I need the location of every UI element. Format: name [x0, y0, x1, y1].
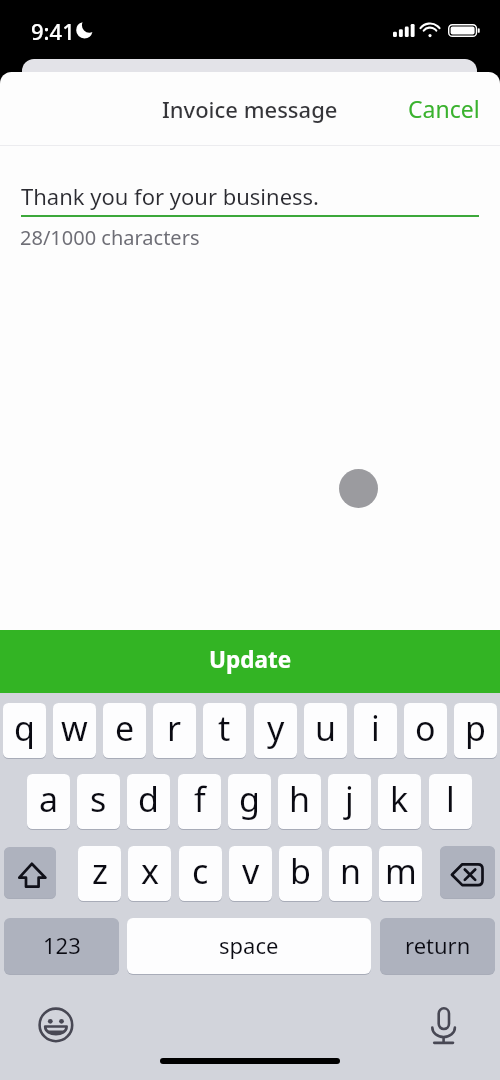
- staticText: 28/1000 characters: [20, 224, 200, 251]
- button[interactable]: r: [153, 703, 196, 758]
- button[interactable]: h: [278, 774, 321, 829]
- button[interactable]: f: [178, 774, 221, 829]
- staticText: 123: [43, 930, 81, 960]
- button[interactable]: z: [78, 846, 121, 901]
- staticText: Invoice message: [162, 94, 338, 124]
- button[interactable]: c: [179, 846, 222, 901]
- button[interactable]: Emoji keyboard: [34, 999, 78, 1043]
- staticText: x: [141, 848, 159, 894]
- button[interactable]: u: [304, 703, 347, 758]
- staticText: s: [90, 776, 107, 822]
- button[interactable]: Cancel: [386, 79, 500, 138]
- button[interactable]: i: [354, 703, 397, 758]
- staticText: t: [218, 705, 231, 751]
- button[interactable]: b: [279, 846, 322, 901]
- staticText: q: [14, 705, 35, 751]
- staticText: h: [289, 776, 311, 822]
- staticText: 9:41: [31, 16, 75, 46]
- button[interactable]: o: [404, 703, 447, 758]
- button[interactable]: m: [379, 846, 422, 901]
- staticText: d: [138, 776, 159, 822]
- button[interactable]: w: [53, 703, 96, 758]
- button[interactable]: space: [127, 918, 371, 974]
- staticText: c: [192, 848, 209, 894]
- staticText: Cancel: [408, 93, 480, 124]
- button[interactable]: x: [128, 846, 171, 901]
- staticText: v: [242, 848, 260, 894]
- button[interactable]: 123: [4, 918, 119, 974]
- staticText: j: [345, 776, 354, 822]
- button[interactable]: e: [103, 703, 146, 758]
- button[interactable]: a: [27, 774, 70, 829]
- staticText: b: [290, 848, 311, 894]
- button[interactable]: j: [328, 774, 371, 829]
- button[interactable]: Backspace: [440, 846, 495, 898]
- staticText: Thank you for your business.: [21, 181, 320, 211]
- button[interactable]: Shift: [4, 847, 56, 898]
- button[interactable]: return: [380, 918, 495, 974]
- staticText: f: [194, 776, 206, 822]
- staticText: p: [465, 705, 486, 751]
- button[interactable]: d: [127, 774, 170, 829]
- staticText: g: [239, 776, 260, 822]
- staticText: space: [219, 930, 279, 960]
- staticText: z: [92, 848, 108, 894]
- staticText: Update: [209, 644, 292, 675]
- button[interactable]: k: [378, 774, 421, 829]
- button[interactable]: y: [254, 703, 297, 758]
- button[interactable]: Update: [0, 630, 500, 693]
- staticText: return: [405, 930, 471, 960]
- button[interactable]: q: [3, 703, 46, 758]
- staticText: m: [385, 848, 417, 894]
- button[interactable]: p: [454, 703, 497, 758]
- button[interactable]: g: [228, 774, 271, 829]
- staticText: k: [390, 776, 409, 822]
- button[interactable]: Voice input: [426, 999, 466, 1049]
- staticText: y: [267, 705, 285, 751]
- button[interactable]: t: [203, 703, 246, 758]
- button[interactable]: l: [429, 774, 472, 829]
- staticText: l: [446, 776, 455, 822]
- button[interactable]: s: [77, 774, 120, 829]
- staticText: i: [371, 705, 380, 751]
- staticText: w: [61, 705, 88, 751]
- staticText: e: [115, 705, 135, 751]
- staticText: u: [315, 705, 337, 751]
- button[interactable]: v: [229, 846, 272, 901]
- staticText: a: [39, 776, 59, 822]
- button[interactable]: n: [329, 846, 372, 901]
- staticText: r: [167, 705, 182, 751]
- staticText: o: [415, 705, 436, 751]
- staticText: n: [340, 848, 362, 894]
